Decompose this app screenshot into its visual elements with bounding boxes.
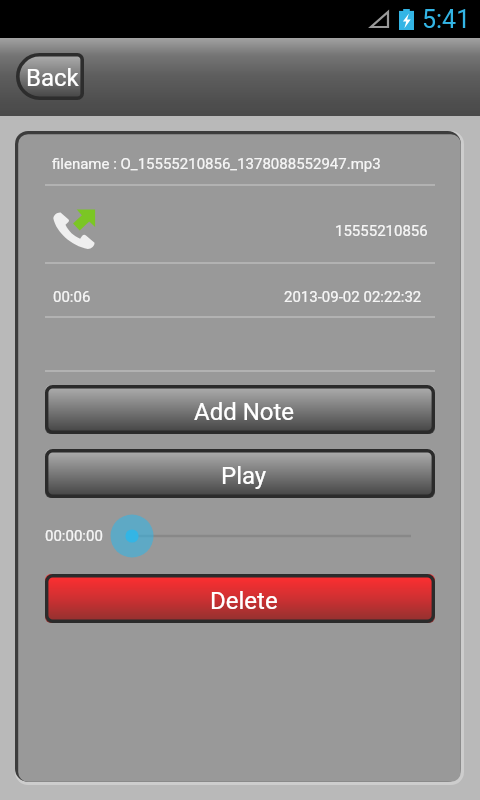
staticText: 00:00:00 [45,527,103,545]
other: Signal strength [370,11,389,28]
staticText: 00:06 [53,288,91,306]
other: Battery charging [399,9,414,30]
staticText: Play [221,462,267,490]
button[interactable]: Back [16,53,84,100]
staticText: 2013-09-02 02:22:32 [284,288,422,306]
button[interactable]: Play [45,449,435,498]
other: Outgoing call [52,208,97,250]
button[interactable]: Add Note [45,385,435,434]
staticText: Delete [210,587,278,615]
staticText: 15555210856 [335,222,428,240]
staticText: Add Note [194,398,295,426]
staticText: Back [26,64,79,92]
staticText: 5:41 [422,5,471,34]
staticText: filename : O_15555210856_1378088552947.m… [52,155,381,173]
button[interactable]: Seek position [15,498,464,574]
button[interactable]: Delete [45,574,435,623]
